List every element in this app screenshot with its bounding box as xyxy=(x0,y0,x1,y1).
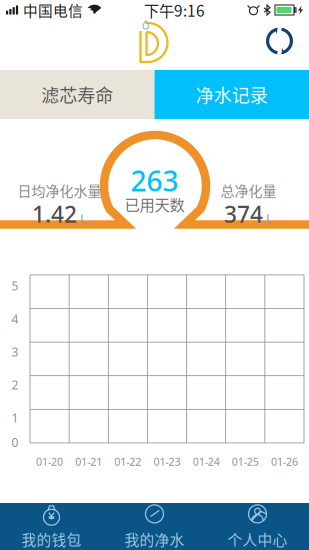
staticText: 日均净化水量 xyxy=(17,180,101,200)
button[interactable]: Refresh xyxy=(266,20,309,69)
staticText: 3 xyxy=(11,344,18,360)
staticText: 我的钱包 xyxy=(21,528,81,550)
staticText: 263 xyxy=(130,162,178,199)
staticText: 下午9:16 xyxy=(144,0,205,21)
staticText: 4 xyxy=(11,311,18,327)
staticText: 已用天数 xyxy=(124,193,184,215)
staticText: 01-23 xyxy=(153,454,180,469)
staticText: 01-21 xyxy=(75,454,102,469)
staticText: L xyxy=(80,209,87,227)
button[interactable]: 我的钱包 xyxy=(0,496,103,550)
staticText: 中国电信 xyxy=(23,0,83,21)
button[interactable]: 个人中心 xyxy=(206,496,309,550)
staticText: 01-26 xyxy=(271,454,298,469)
staticText: 滤芯寿命 xyxy=(41,81,113,108)
staticText: 0 xyxy=(11,434,18,450)
staticText: 总净化量 xyxy=(220,180,276,200)
staticText: 2 xyxy=(11,377,18,393)
staticText: 01-25 xyxy=(232,454,259,469)
button[interactable]: 滤芯寿命 xyxy=(0,70,154,119)
button[interactable]: 我的净水 xyxy=(103,496,206,550)
staticText: 374 xyxy=(224,199,263,229)
staticText: 我的净水 xyxy=(124,528,184,550)
staticText: L xyxy=(266,209,273,227)
staticText: 个人中心 xyxy=(227,528,287,550)
staticText: 净水记录 xyxy=(196,81,268,108)
staticText: 1 xyxy=(11,410,18,426)
button[interactable]: 净水记录 xyxy=(154,70,309,119)
staticText: 01-22 xyxy=(114,454,141,469)
staticText: 01-24 xyxy=(193,454,220,469)
staticText: 01-20 xyxy=(36,454,63,469)
staticText: 5 xyxy=(11,278,18,294)
staticText: 1.42 xyxy=(32,199,77,229)
